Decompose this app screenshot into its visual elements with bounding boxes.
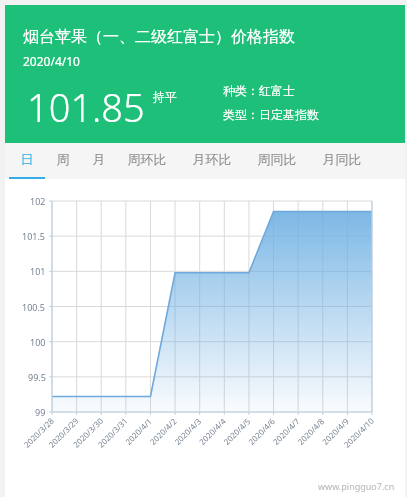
button[interactable] (118, 143, 176, 179)
button[interactable] (183, 143, 241, 179)
button[interactable] (45, 143, 81, 179)
button[interactable] (313, 143, 371, 179)
button[interactable] (81, 143, 117, 179)
button[interactable] (248, 143, 306, 179)
button[interactable] (9, 143, 45, 179)
